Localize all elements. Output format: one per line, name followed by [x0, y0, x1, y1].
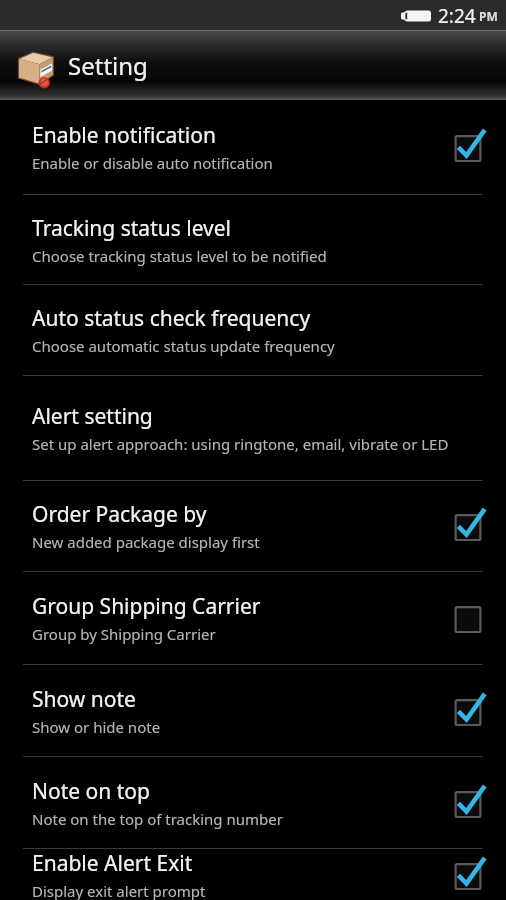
staticText: PM — [479, 8, 498, 24]
staticText: Note on the top of tracking number — [32, 809, 283, 829]
button[interactable]: Checked — [446, 781, 490, 825]
button[interactable]: Show note — [0, 665, 506, 756]
staticText: Order Package by — [32, 500, 207, 529]
staticText: Group by Shipping Carrier — [32, 624, 216, 644]
staticText: 2:24 — [438, 3, 476, 29]
staticText: Enable notification — [32, 121, 216, 150]
staticText: Set up alert approach: using ringtone, e… — [32, 434, 449, 454]
button[interactable]: Tracking status level — [0, 195, 506, 284]
button[interactable]: Checked — [446, 689, 490, 733]
button[interactable]: Setting — [0, 31, 506, 100]
button[interactable]: Enable Alert Exit — [0, 849, 506, 900]
staticText: Display exit alert prompt — [32, 881, 206, 900]
staticText: Tracking status level — [32, 214, 231, 243]
staticText: Group Shipping Carrier — [32, 592, 261, 621]
button[interactable]: Auto status check frequency — [0, 285, 506, 375]
staticText: Note on top — [32, 777, 150, 806]
staticText: Choose automatic status update frequency — [32, 336, 335, 356]
staticText: New added package display first — [32, 532, 260, 552]
button[interactable]: Checked — [446, 504, 490, 548]
staticText: Choose tracking status level to be notif… — [32, 246, 327, 266]
button[interactable]: Checked — [446, 125, 490, 169]
staticText: Setting — [68, 49, 148, 82]
button[interactable]: Note on top — [0, 757, 506, 848]
button[interactable]: Unchecked — [446, 596, 490, 640]
button[interactable]: Checked — [446, 853, 490, 897]
staticText: Show note — [32, 685, 136, 714]
button[interactable]: Group Shipping Carrier — [0, 572, 506, 664]
staticText: Auto status check frequency — [32, 304, 311, 333]
staticText: Enable or disable auto notification — [32, 153, 273, 173]
button[interactable]: Order Package by — [0, 481, 506, 571]
staticText: Enable Alert Exit — [32, 849, 193, 878]
staticText: Show or hide note — [32, 717, 161, 737]
button[interactable]: Alert setting — [0, 376, 506, 480]
button[interactable]: Enable notification — [0, 100, 506, 194]
staticText: Alert setting — [32, 402, 153, 431]
